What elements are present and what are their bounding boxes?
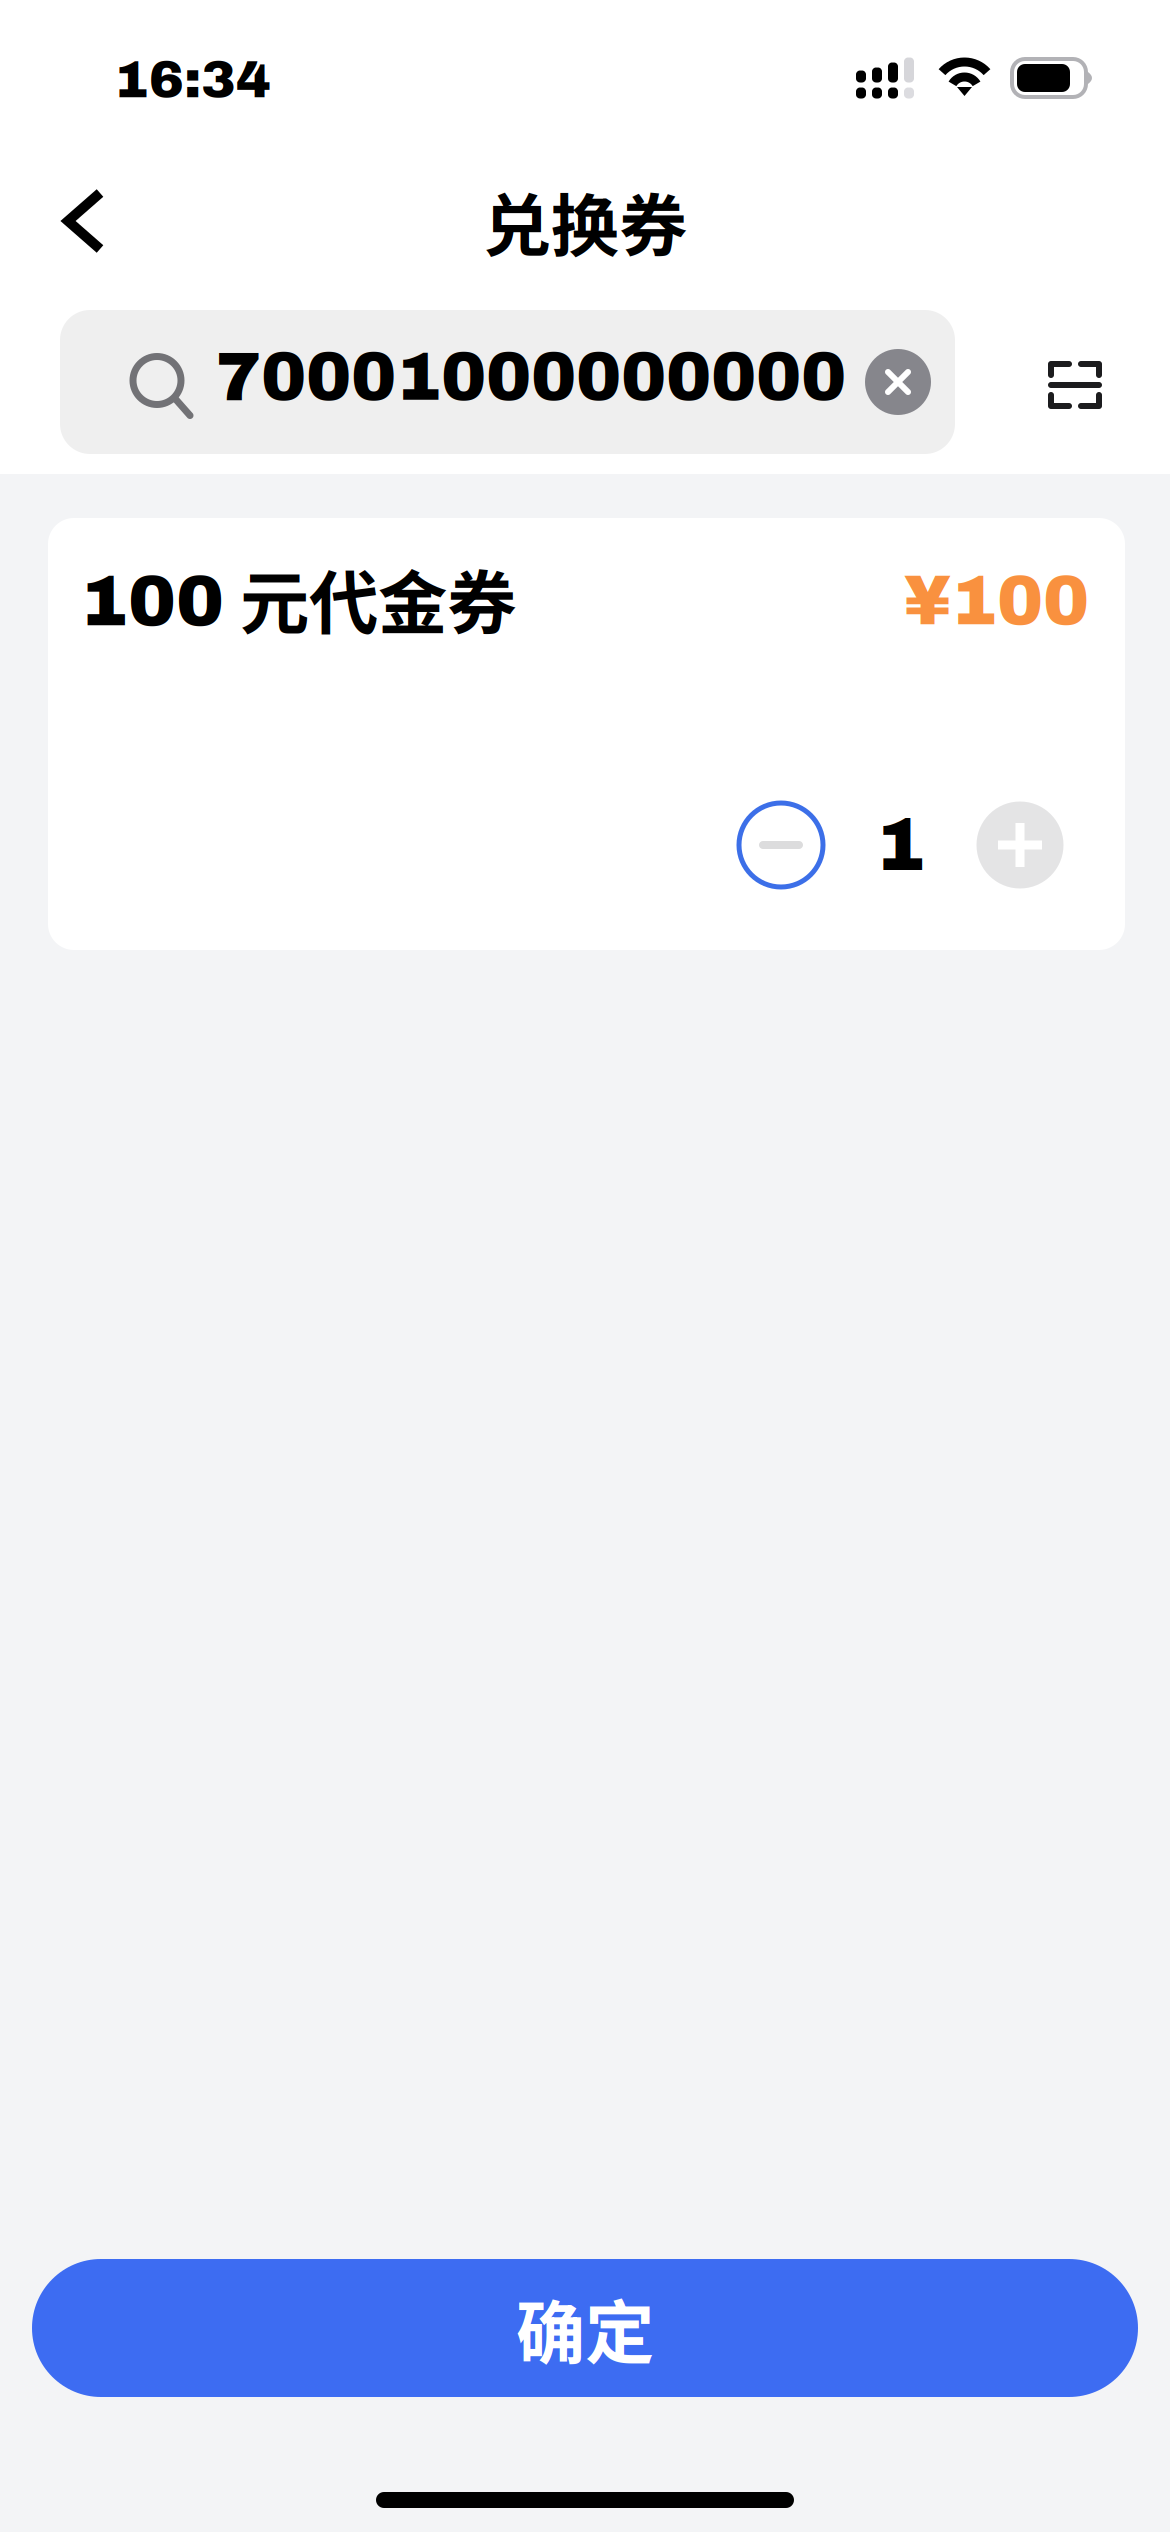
button[interactable]: Back xyxy=(0,176,152,294)
button[interactable]: Increase quantity xyxy=(976,801,1064,889)
staticText: ¥100 xyxy=(904,563,1089,639)
staticText: 16:34 xyxy=(114,52,271,108)
staticText: 确定 xyxy=(516,2278,654,2378)
staticText: 兑换券 xyxy=(483,172,687,270)
button[interactable]: 确定 xyxy=(32,2259,1138,2397)
staticText: 100 xyxy=(80,562,224,640)
button[interactable]: Decrease quantity xyxy=(737,801,825,889)
staticText: 元代金券 xyxy=(224,548,516,648)
button[interactable]: Clear text xyxy=(865,337,955,427)
staticText: 70001000000000 xyxy=(216,340,846,414)
staticText: 1 xyxy=(875,804,925,886)
button[interactable]: Scan barcode xyxy=(998,322,1127,442)
